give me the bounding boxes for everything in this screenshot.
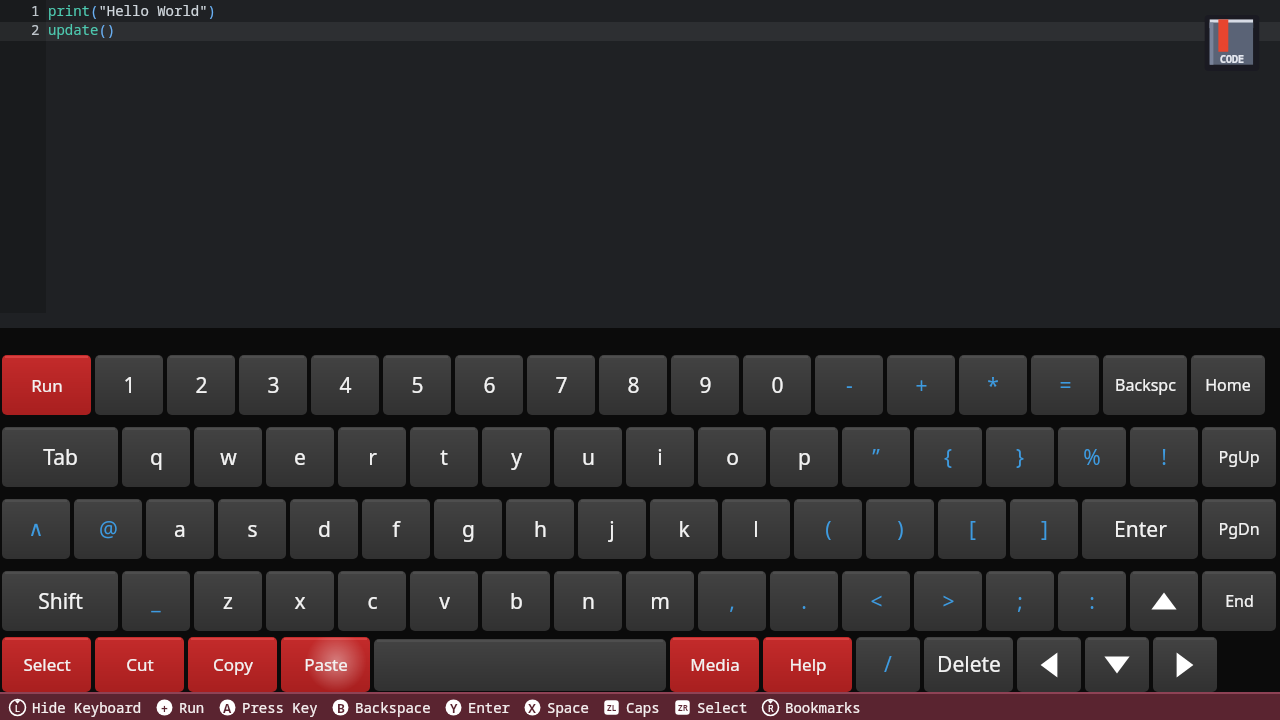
button[interactable]: 9 [671, 355, 739, 415]
button[interactable]: e [266, 427, 334, 487]
button[interactable]: g [434, 499, 502, 559]
button[interactable]: { [914, 427, 982, 487]
button[interactable]: 4 [311, 355, 379, 415]
button[interactable]: [ [938, 499, 1006, 559]
button[interactable]: 5 [383, 355, 451, 415]
button[interactable]: Backspc [1103, 355, 1187, 415]
button[interactable]: a [146, 499, 214, 559]
button[interactable]: ZL [602, 698, 660, 717]
button[interactable]: > [914, 571, 982, 631]
button[interactable]: * [959, 355, 1027, 415]
button[interactable]: x [266, 571, 334, 631]
button[interactable]: k [650, 499, 718, 559]
button[interactable]: ∧ [2, 499, 70, 559]
button[interactable]: = [1031, 355, 1099, 415]
button[interactable]: 2 [167, 355, 235, 415]
button[interactable]: PgUp [1202, 427, 1276, 487]
button[interactable]: z [194, 571, 262, 631]
button[interactable]: + [887, 355, 955, 415]
button[interactable]: Copy [188, 637, 277, 692]
button[interactable]: B [331, 698, 431, 717]
button[interactable]: Up [1130, 571, 1198, 631]
button[interactable]: t [410, 427, 478, 487]
button[interactable]: X [523, 698, 589, 717]
button[interactable]: r [338, 427, 406, 487]
button[interactable]: : [1058, 571, 1126, 631]
staticText: c [367, 587, 378, 616]
button[interactable]: Code book [1201, 12, 1263, 74]
button[interactable]: i [626, 427, 694, 487]
button[interactable]: 6 [455, 355, 523, 415]
button[interactable]: < [842, 571, 910, 631]
staticText: A [223, 700, 232, 716]
button[interactable]: h [506, 499, 574, 559]
button[interactable]: @ [74, 499, 142, 559]
button[interactable]: R [761, 698, 861, 717]
button[interactable]: Down [1085, 637, 1149, 692]
button[interactable]: n [554, 571, 622, 631]
button[interactable]: % [1058, 427, 1126, 487]
button[interactable]: ) [866, 499, 934, 559]
button[interactable]: Delete [924, 637, 1013, 692]
staticText: Run [179, 698, 205, 717]
button[interactable]: Y [444, 698, 510, 717]
button[interactable]: _ [122, 571, 190, 631]
staticText: Paste [304, 653, 348, 676]
staticText: 6 [483, 371, 496, 400]
button[interactable]: b [482, 571, 550, 631]
button[interactable]: w [194, 427, 262, 487]
button[interactable]: , [698, 571, 766, 631]
button[interactable]: Select [2, 637, 91, 692]
button[interactable]: p [770, 427, 838, 487]
button[interactable]: / [856, 637, 920, 692]
button[interactable]: End [1202, 571, 1276, 631]
button[interactable]: ” [842, 427, 910, 487]
button[interactable]: Home [1191, 355, 1265, 415]
button[interactable]: + [155, 698, 205, 717]
button[interactable]: 1 [95, 355, 163, 415]
staticText: e [294, 443, 306, 472]
staticText: * [987, 371, 999, 400]
button[interactable]: L [8, 698, 142, 717]
button[interactable]: j [578, 499, 646, 559]
button[interactable]: Media [670, 637, 759, 692]
button[interactable]: PgDn [1202, 499, 1276, 559]
button[interactable]: A [218, 698, 318, 717]
button[interactable]: - [815, 355, 883, 415]
button[interactable]: y [482, 427, 550, 487]
staticText: q [150, 443, 163, 472]
button[interactable]: 0 [743, 355, 811, 415]
button[interactable]: ( [794, 499, 862, 559]
button[interactable]: . [770, 571, 838, 631]
button[interactable]: u [554, 427, 622, 487]
button[interactable]: o [698, 427, 766, 487]
staticText: 3 [267, 371, 280, 400]
button[interactable]: v [410, 571, 478, 631]
button[interactable]: Help [763, 637, 852, 692]
button[interactable]: q [122, 427, 190, 487]
button[interactable]: 7 [527, 355, 595, 415]
button[interactable]: 8 [599, 355, 667, 415]
button[interactable]: Paste [281, 637, 370, 692]
button[interactable]: Left [1017, 637, 1081, 692]
button[interactable]: m [626, 571, 694, 631]
button[interactable]: l [722, 499, 790, 559]
button[interactable]: ] [1010, 499, 1078, 559]
button[interactable]: ZR [673, 698, 748, 717]
staticText: a [174, 515, 186, 544]
button[interactable]: f [362, 499, 430, 559]
button[interactable]: Space [374, 639, 666, 691]
button[interactable]: } [986, 427, 1054, 487]
button[interactable]: 3 [239, 355, 307, 415]
button[interactable]: s [218, 499, 286, 559]
button[interactable]: Enter [1082, 499, 1198, 559]
button[interactable]: ! [1130, 427, 1198, 487]
button[interactable]: ; [986, 571, 1054, 631]
button[interactable]: Tab [2, 427, 118, 487]
button[interactable]: Right [1153, 637, 1217, 692]
button[interactable]: Shift [2, 571, 118, 631]
button[interactable]: c [338, 571, 406, 631]
button[interactable]: Cut [95, 637, 184, 692]
button[interactable]: Run [2, 355, 91, 415]
button[interactable]: d [290, 499, 358, 559]
